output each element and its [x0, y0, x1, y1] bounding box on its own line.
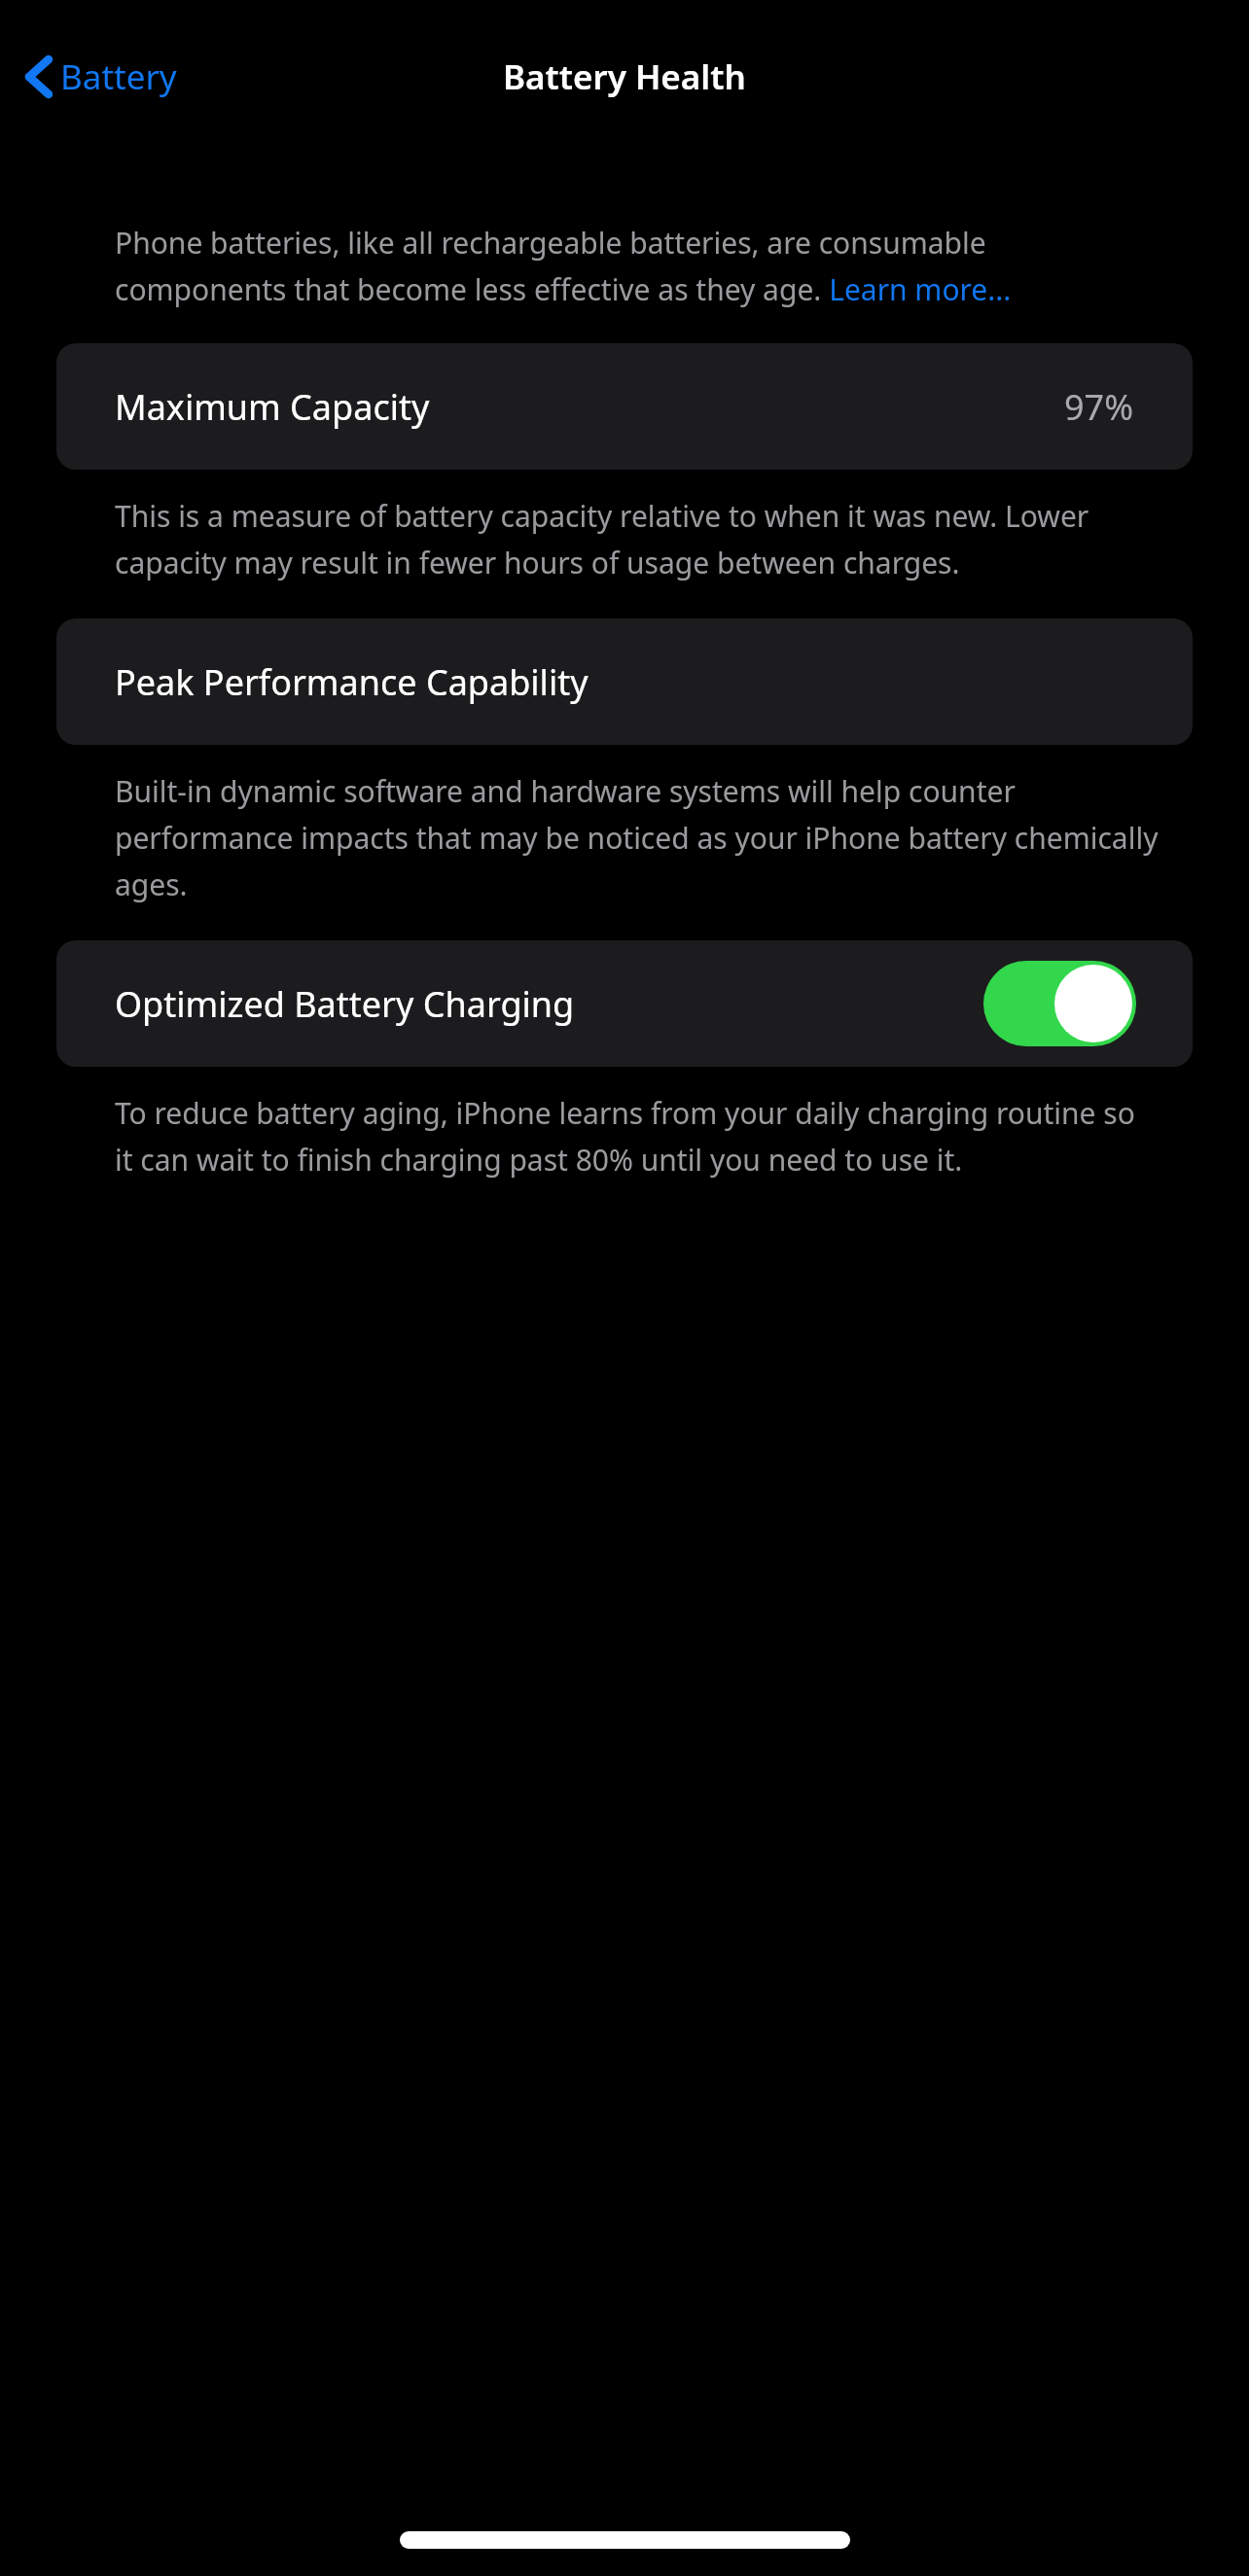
button[interactable]: Optimized Battery Charging toggle [983, 961, 1136, 1046]
staticText: Optimized Battery Charging [115, 980, 575, 1028]
staticText: Built-in dynamic software and hardware s… [115, 771, 1160, 903]
staticText: Maximum Capacity [115, 383, 430, 431]
staticText: This is a measure of battery capacity re… [115, 496, 1160, 582]
button[interactable]: Optimized Battery Charging [56, 940, 1193, 1067]
button[interactable]: Back to Battery [19, 46, 183, 108]
staticText: Battery [60, 53, 177, 100]
button[interactable]: Maximum Capacity [56, 343, 1193, 470]
staticText: To reduce battery aging, iPhone learns f… [115, 1093, 1160, 1179]
staticText: Peak Performance Capability [115, 658, 589, 706]
staticText: Phone batteries, like all rechargeable b… [115, 223, 1160, 308]
button[interactable]: Phone batteries, like all rechargeable b… [115, 223, 1160, 308]
staticText: 97% [1064, 383, 1134, 431]
staticText: Battery Health [503, 53, 746, 100]
button[interactable]: Peak Performance Capability [56, 618, 1193, 745]
